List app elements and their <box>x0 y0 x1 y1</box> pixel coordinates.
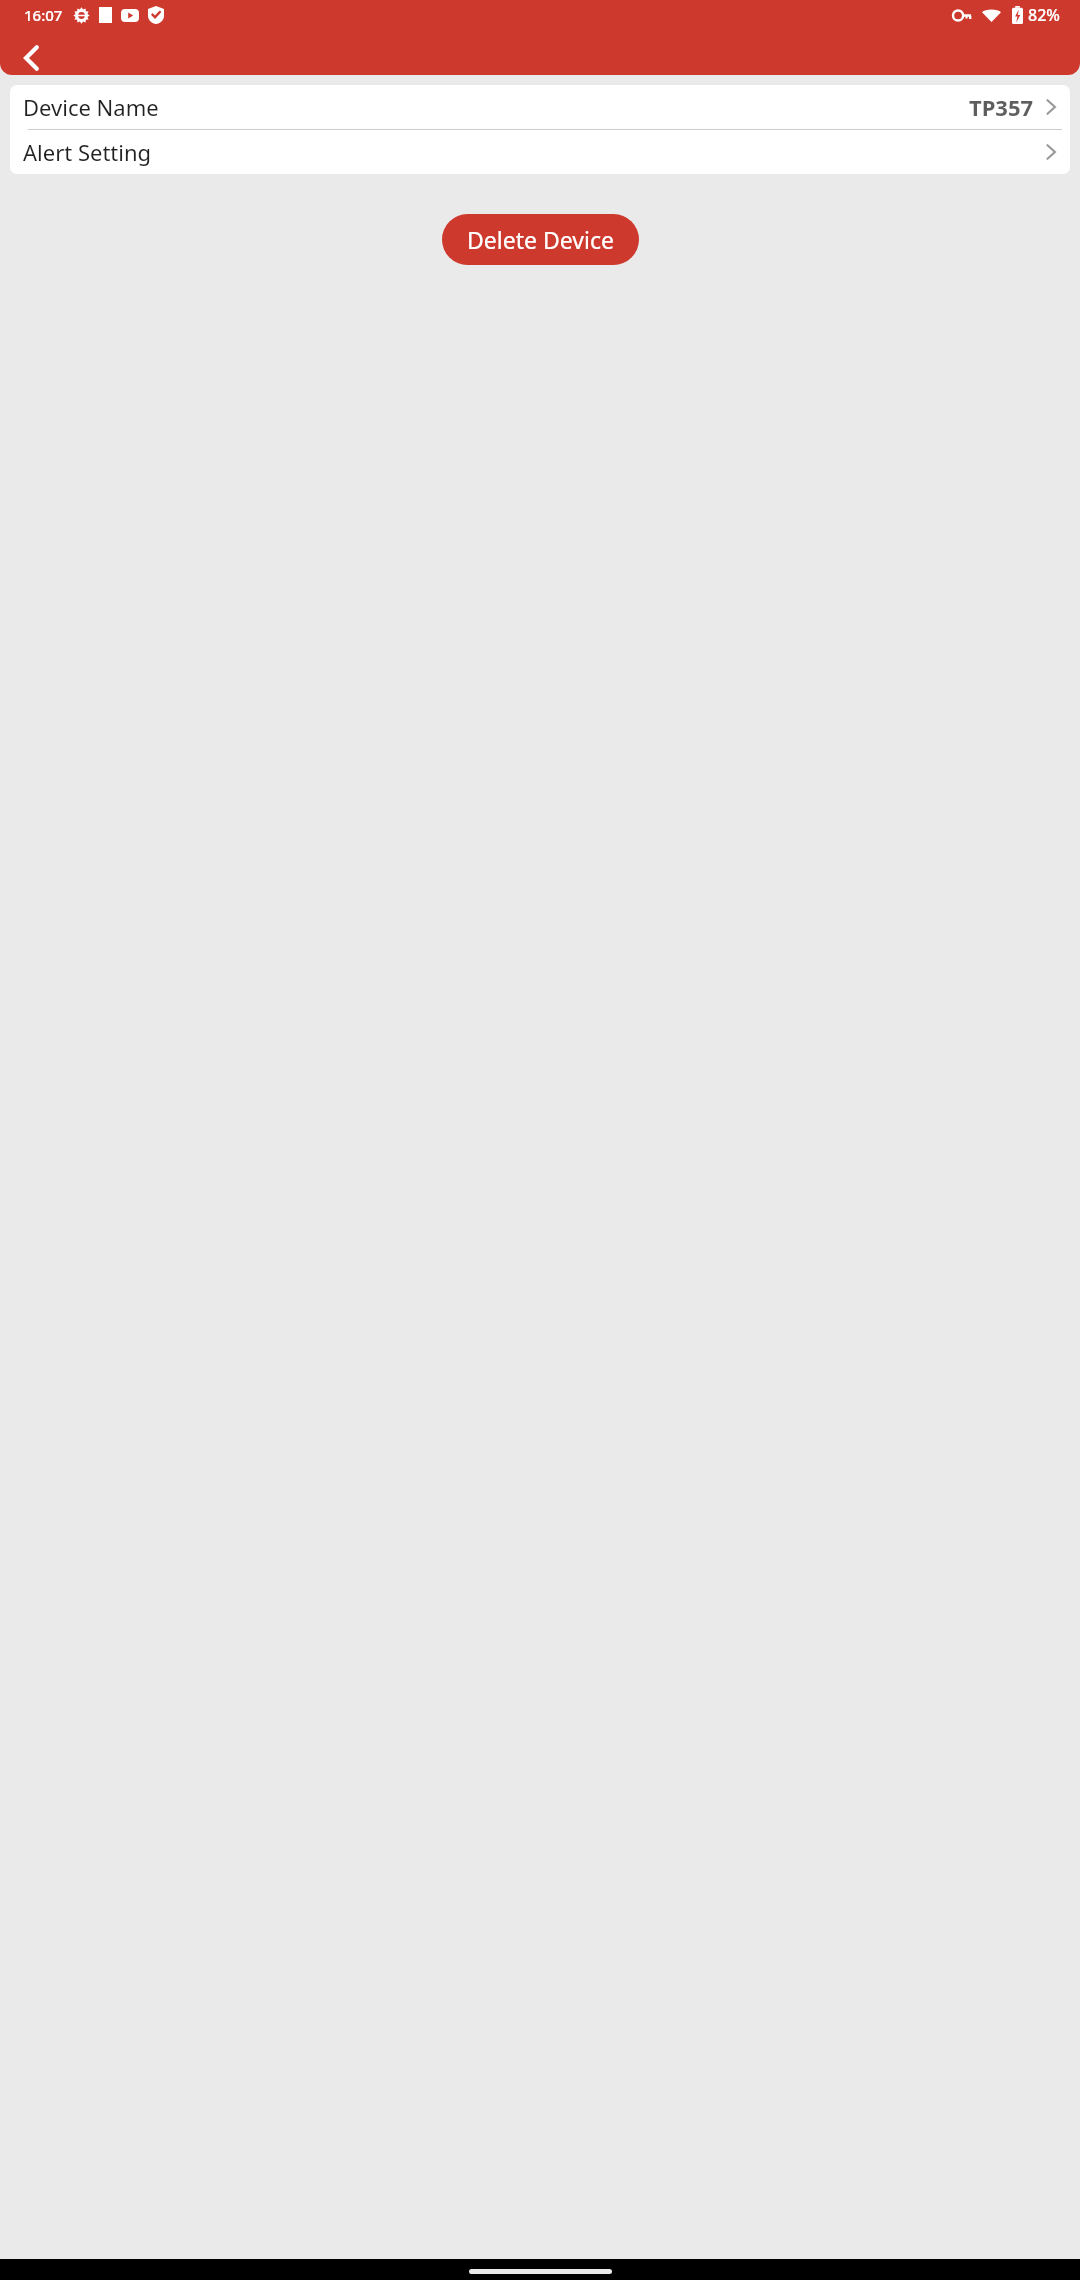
button[interactable]: Delete Device <box>442 214 639 265</box>
button[interactable]: Device Name <box>10 85 1070 129</box>
staticText: TP357 <box>969 92 1034 122</box>
staticText: 82% <box>1028 4 1060 26</box>
staticText: Delete Device <box>467 224 614 255</box>
button[interactable]: Alert Setting <box>10 130 1070 174</box>
staticText: Alert Setting <box>23 137 152 167</box>
staticText: 16:07 <box>24 5 63 25</box>
staticText: Device Name <box>23 92 159 122</box>
button[interactable]: Back <box>6 32 58 75</box>
